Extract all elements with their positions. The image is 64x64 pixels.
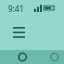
button[interactable]: Home: [0, 50, 44, 64]
button[interactable]: Stats: [44, 50, 64, 64]
button[interactable]: Menu: [8, 22, 30, 44]
staticText: 9:41: [8, 3, 24, 14]
